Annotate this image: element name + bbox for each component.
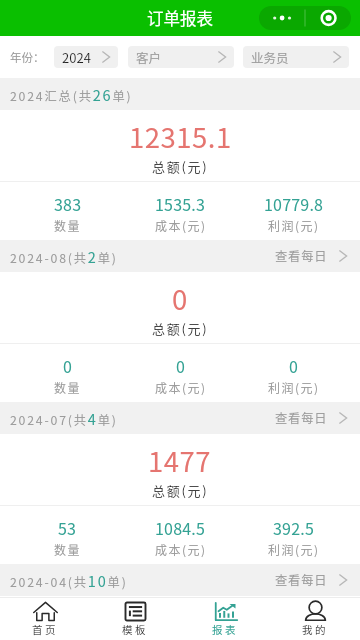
staticText: 年份： <box>10 49 45 66</box>
staticText: 利润(元) <box>268 379 320 396</box>
staticText: 数量 <box>54 217 82 234</box>
staticText: 2024 <box>62 48 91 67</box>
staticText: 成本(元) <box>155 217 207 234</box>
staticText: 383 <box>54 192 82 215</box>
staticText: 1084.5 <box>155 516 206 539</box>
button[interactable]: 0 <box>11 344 124 402</box>
staticText: 利润(元) <box>268 217 320 234</box>
staticText: 订单报表 <box>147 6 213 30</box>
staticText: 2024-04(共10单) <box>10 570 128 591</box>
staticText: 成本(元) <box>155 541 207 558</box>
staticText: 0 <box>172 278 188 318</box>
button[interactable]: 查看每日 <box>275 403 347 433</box>
button[interactable]: 10779.8 <box>237 182 350 240</box>
staticText: 查看每日 <box>275 247 328 265</box>
button[interactable]: 查看每日 <box>275 565 347 595</box>
button[interactable]: 模板 <box>90 598 180 640</box>
button[interactable]: 0 <box>237 344 350 402</box>
staticText: 总额(元) <box>152 481 209 500</box>
button[interactable]: 0 <box>124 344 237 402</box>
staticText: 数量 <box>54 379 82 396</box>
button[interactable]: More options <box>259 6 351 30</box>
button[interactable]: 53 <box>11 506 124 564</box>
staticText: 0 <box>176 354 186 377</box>
staticText: 查看每日 <box>275 409 328 427</box>
button[interactable]: 392.5 <box>237 506 350 564</box>
staticText: 成本(元) <box>155 379 207 396</box>
staticText: 查看每日 <box>275 571 328 589</box>
button[interactable]: 客户 <box>128 46 234 68</box>
staticText: 10779.8 <box>264 192 324 215</box>
staticText: 报表 <box>212 622 238 637</box>
staticText: 模板 <box>122 622 148 637</box>
staticText: 2024-08(共2单) <box>10 246 118 267</box>
staticText: 53 <box>58 516 77 539</box>
staticText: 数量 <box>54 541 82 558</box>
button[interactable]: 我的 <box>270 598 360 640</box>
button[interactable]: 业务员 <box>243 46 349 68</box>
staticText: 1535.3 <box>155 192 206 215</box>
button[interactable]: 1535.3 <box>124 182 237 240</box>
button[interactable]: 383 <box>11 182 124 240</box>
staticText: 首页 <box>32 622 58 637</box>
staticText: 总额(元) <box>152 157 209 176</box>
button[interactable]: 2024 <box>54 46 118 68</box>
staticText: 2024-07(共4单) <box>10 408 118 429</box>
staticText: 0 <box>289 354 299 377</box>
staticText: 0 <box>63 354 73 377</box>
staticText: 业务员 <box>251 48 289 66</box>
staticText: 利润(元) <box>268 541 320 558</box>
button[interactable]: 1084.5 <box>124 506 237 564</box>
staticText: 392.5 <box>273 516 314 539</box>
staticText: 客户 <box>136 48 162 66</box>
staticText: 1477 <box>148 440 212 480</box>
button[interactable]: 首页 <box>0 598 90 640</box>
staticText: 12315.1 <box>129 116 232 156</box>
button[interactable]: 查看每日 <box>275 241 347 271</box>
staticText: 总额(元) <box>152 319 209 338</box>
staticText: 我的 <box>302 622 328 637</box>
button[interactable]: 报表 <box>180 598 270 640</box>
staticText: 2024汇总(共26单) <box>10 84 133 105</box>
